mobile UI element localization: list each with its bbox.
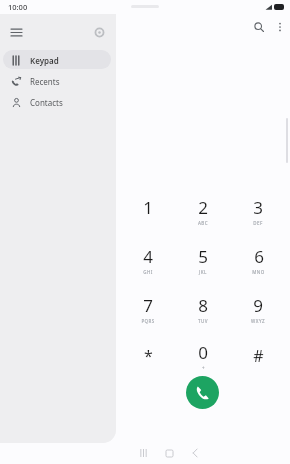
- staticText: GHI: [143, 269, 153, 275]
- staticText: 8: [198, 294, 208, 317]
- staticText: 2: [198, 196, 208, 219]
- button[interactable]: *: [125, 341, 171, 375]
- button[interactable]: Keypad: [3, 50, 111, 69]
- button[interactable]: 4: [125, 245, 171, 279]
- staticText: Keypad: [30, 55, 59, 66]
- staticText: MNO: [252, 269, 265, 275]
- staticText: 6: [254, 245, 264, 268]
- button[interactable]: 8: [180, 294, 226, 328]
- staticText: 1: [143, 196, 153, 219]
- button[interactable]: 3: [235, 196, 281, 230]
- button[interactable]: Recents: [3, 71, 111, 90]
- staticText: 10:00: [8, 2, 28, 12]
- staticText: 0: [198, 341, 208, 364]
- button[interactable]: Menu: [5, 21, 27, 43]
- button[interactable]: #: [235, 341, 281, 375]
- button[interactable]: 7: [125, 294, 171, 328]
- button[interactable]: 0: [180, 341, 226, 375]
- staticText: *: [144, 345, 153, 367]
- button[interactable]: 2: [180, 196, 226, 230]
- staticText: JKL: [199, 269, 207, 275]
- button[interactable]: 9: [235, 294, 281, 328]
- button[interactable]: 1: [125, 196, 171, 230]
- staticText: 4: [143, 245, 153, 268]
- button[interactable]: Contacts: [3, 92, 111, 111]
- staticText: ABC: [198, 220, 208, 226]
- staticText: Recents: [30, 76, 60, 87]
- staticText: TUV: [198, 318, 208, 324]
- button[interactable]: Settings: [88, 21, 110, 43]
- button[interactable]: Back: [182, 442, 208, 464]
- button[interactable]: Call: [186, 376, 219, 409]
- button[interactable]: 5: [180, 245, 226, 279]
- staticText: 5: [198, 245, 208, 268]
- staticText: #: [253, 345, 264, 367]
- staticText: 9: [253, 294, 263, 317]
- staticText: PQRS: [141, 318, 155, 324]
- button[interactable]: More options: [270, 17, 290, 37]
- staticText: 7: [143, 294, 153, 317]
- button[interactable]: Recent apps: [130, 442, 156, 464]
- button[interactable]: Home: [156, 442, 182, 464]
- staticText: +: [202, 365, 205, 371]
- staticText: WXYZ: [251, 318, 265, 324]
- staticText: Contacts: [30, 97, 63, 108]
- button[interactable]: 6: [235, 245, 281, 279]
- staticText: DEF: [253, 220, 263, 226]
- button[interactable]: Search: [249, 17, 269, 37]
- staticText: 3: [253, 196, 263, 219]
